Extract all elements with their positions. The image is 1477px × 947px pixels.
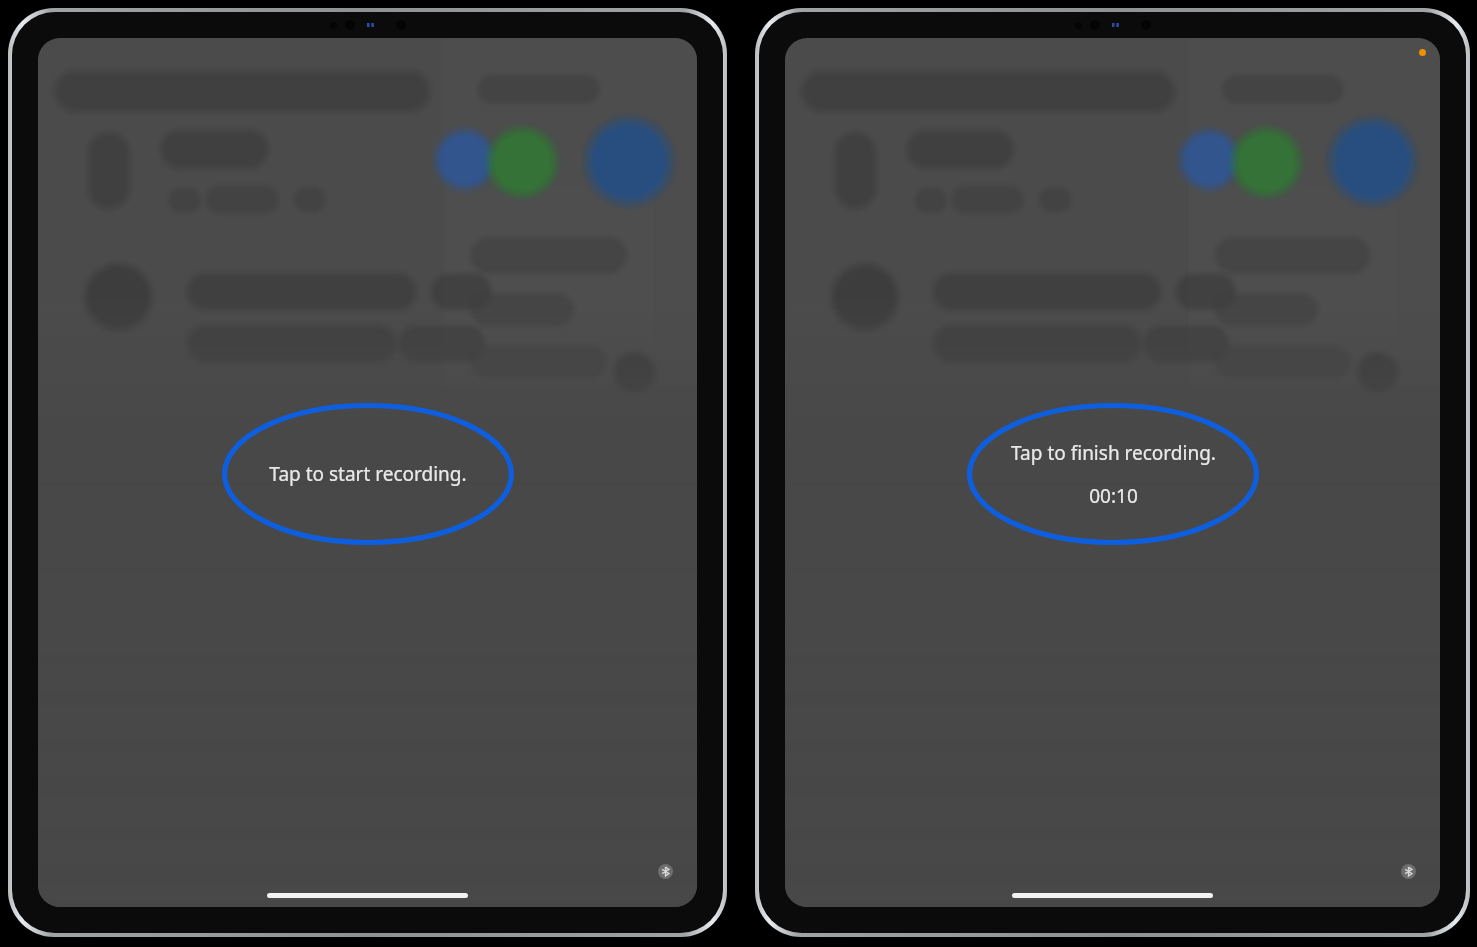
button[interactable]: Bluetooth xyxy=(1401,864,1416,879)
staticText: Tap to finish recording. xyxy=(1011,440,1216,466)
button[interactable]: Tap to start recording. xyxy=(222,403,514,545)
button[interactable]: Bluetooth xyxy=(658,864,673,879)
button[interactable]: Tap to finish recording. xyxy=(967,403,1259,545)
staticText: 00:10 xyxy=(1089,483,1138,509)
staticText: Tap to start recording. xyxy=(269,461,467,487)
